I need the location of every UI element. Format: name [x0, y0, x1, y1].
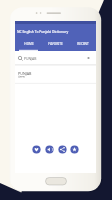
button[interactable]: NC English To Punjabi Dictionary	[15, 24, 96, 37]
button[interactable]: Bookmark	[69, 142, 80, 156]
button[interactable]: PUNJAB	[15, 66, 96, 84]
button[interactable]: FAVORITE	[42, 37, 69, 51]
button[interactable]: PUNJAB	[15, 51, 96, 66]
staticText: RECENT	[77, 42, 89, 46]
staticText: NC English To Punjabi Dictionary	[17, 29, 69, 33]
staticText: ਪੰਜਾਬ	[18, 76, 25, 79]
button[interactable]: Share	[56, 142, 69, 156]
staticText: HOME	[24, 42, 34, 46]
button[interactable]: Favourite	[30, 142, 43, 156]
button[interactable]: Listen	[43, 142, 56, 156]
button[interactable]: RECENT	[69, 37, 96, 51]
button[interactable]: HOME	[15, 37, 42, 51]
staticText: FAVORITE	[48, 42, 63, 46]
staticText: PUNJAB	[18, 71, 32, 76]
staticText: PUNJAB	[24, 56, 37, 61]
